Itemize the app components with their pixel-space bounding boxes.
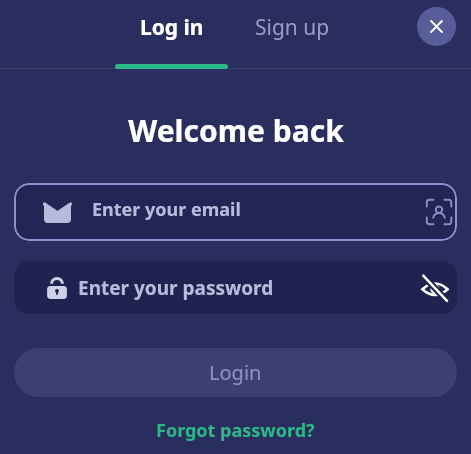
staticText: Welcome back (128, 110, 344, 151)
button[interactable]: Scan face (418, 183, 457, 241)
button[interactable]: Sign up (236, 0, 349, 69)
staticText: Login (209, 359, 262, 386)
button[interactable]: Show password (412, 261, 457, 314)
button[interactable]: Forgot password? (146, 414, 325, 447)
staticText: Enter your email (92, 197, 241, 222)
button[interactable]: Login (14, 348, 457, 397)
staticText: Enter your password (78, 275, 274, 301)
button[interactable]: Log in (115, 0, 228, 69)
staticText: Sign up (255, 13, 330, 42)
button[interactable]: Enter your email (14, 183, 457, 241)
button[interactable]: Enter your password (14, 261, 457, 314)
staticText: Forgot password? (156, 418, 315, 443)
button[interactable]: Close (417, 7, 456, 46)
staticText: Log in (140, 13, 204, 42)
